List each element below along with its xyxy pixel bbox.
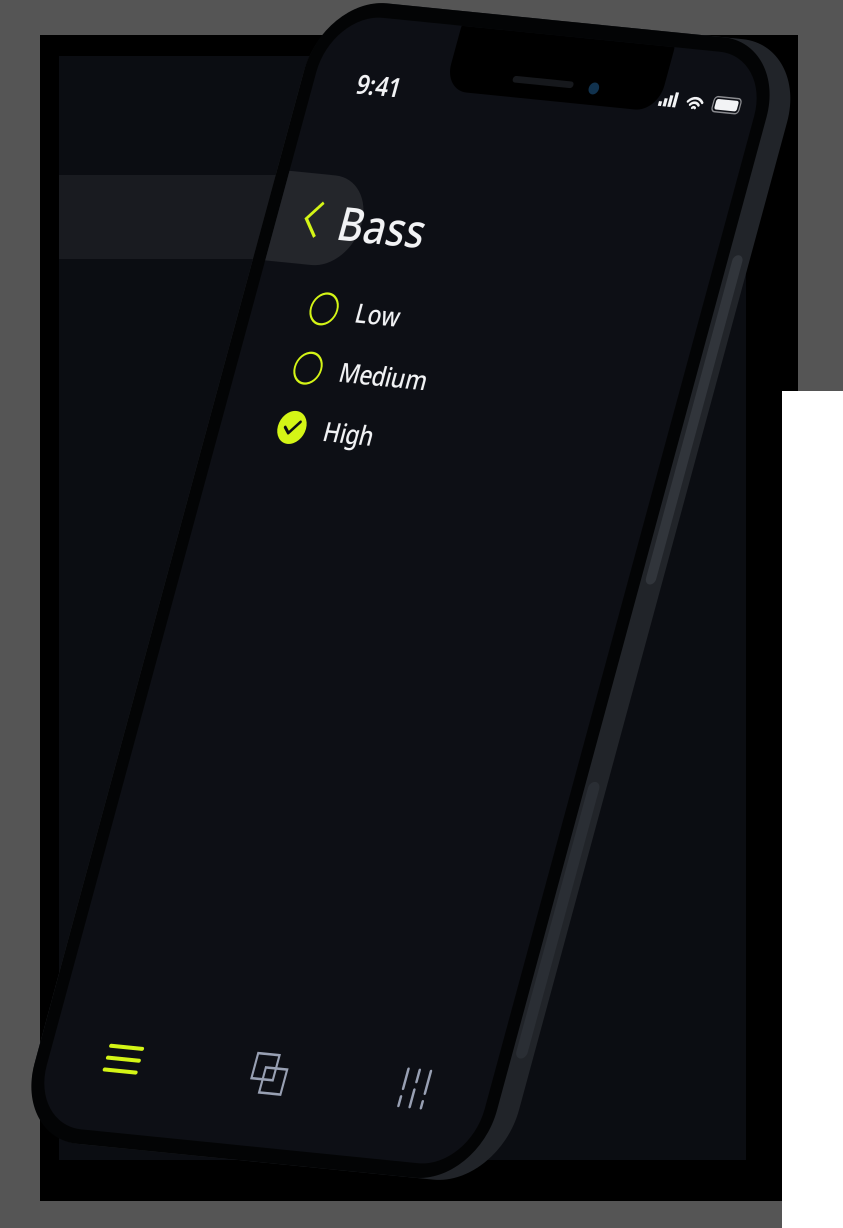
button[interactable]: Layers	[465, 767, 595, 827]
button[interactable]: Equalizer	[595, 767, 725, 827]
button[interactable]: Medium	[335, 250, 725, 295]
button[interactable]: High	[335, 295, 725, 340]
button[interactable]: Low	[335, 205, 725, 250]
